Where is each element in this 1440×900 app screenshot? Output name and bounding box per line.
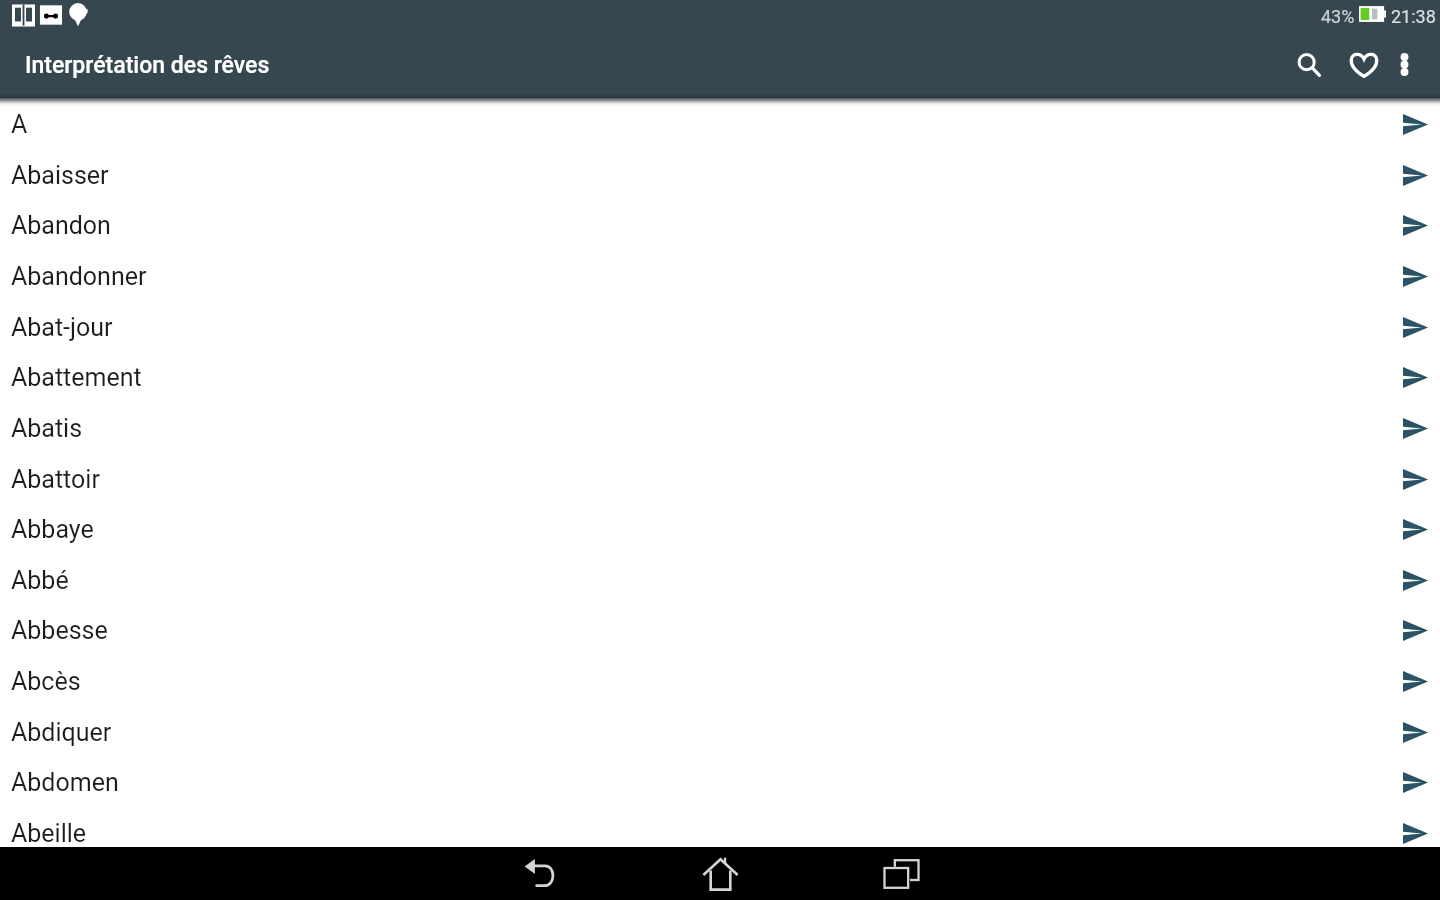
- button[interactable]: Open Abandonner: [1392, 253, 1440, 304]
- button[interactable]: Abdomen: [0, 759, 1440, 810]
- button[interactable]: Abatis: [0, 405, 1440, 456]
- staticText: Abaisser: [11, 161, 1392, 190]
- staticText: Abattoir: [11, 465, 1392, 494]
- button[interactable]: Favorites: [1339, 40, 1388, 89]
- button[interactable]: Home: [630, 847, 811, 900]
- staticText: Abattement: [11, 363, 1392, 392]
- staticText: Abeille: [11, 819, 1392, 848]
- button[interactable]: Abandonner: [0, 253, 1440, 304]
- button[interactable]: Open Abandon: [1392, 202, 1440, 253]
- button[interactable]: Open Abattement: [1392, 354, 1440, 405]
- button[interactable]: Abandon: [0, 202, 1440, 253]
- staticText: Abbesse: [11, 616, 1392, 645]
- button[interactable]: Open Abat-jour: [1392, 304, 1440, 355]
- button[interactable]: Abbesse: [0, 607, 1440, 658]
- button[interactable]: Abat-jour: [0, 304, 1440, 355]
- button[interactable]: Abdiquer: [0, 709, 1440, 760]
- button[interactable]: Open Abdiquer: [1392, 709, 1440, 760]
- staticText: Abcès: [11, 667, 1392, 696]
- staticText: Abandon: [11, 211, 1392, 240]
- button[interactable]: Open Abatis: [1392, 405, 1440, 456]
- button[interactable]: Open A: [1392, 101, 1440, 152]
- button[interactable]: Abbé: [0, 557, 1440, 608]
- staticText: 43%: [1321, 6, 1355, 27]
- button[interactable]: Open Abeille: [1392, 810, 1440, 861]
- staticText: Abat-jour: [11, 313, 1392, 342]
- button[interactable]: Open Abbé: [1392, 557, 1440, 608]
- button[interactable]: Open Abattoir: [1392, 456, 1440, 507]
- staticText: 21:38: [1391, 6, 1436, 27]
- staticText: Abandonner: [11, 262, 1392, 291]
- button[interactable]: Open Abbaye: [1392, 506, 1440, 557]
- button[interactable]: Abcès: [0, 658, 1440, 709]
- button[interactable]: More options: [1382, 42, 1426, 86]
- staticText: Abdiquer: [11, 718, 1392, 747]
- button[interactable]: Abbaye: [0, 506, 1440, 557]
- button[interactable]: A: [0, 101, 1440, 152]
- button[interactable]: Back: [449, 847, 630, 900]
- button[interactable]: Open Abaisser: [1392, 152, 1440, 203]
- button[interactable]: Search: [1284, 40, 1333, 89]
- button[interactable]: Open Abcès: [1392, 658, 1440, 709]
- button[interactable]: Abeille: [0, 810, 1440, 861]
- button[interactable]: Abattement: [0, 354, 1440, 405]
- staticText: Abatis: [11, 414, 1392, 443]
- staticText: Interprétation des rêves: [25, 52, 270, 79]
- staticText: Abbaye: [11, 515, 1392, 544]
- staticText: Abbé: [11, 566, 1392, 595]
- button[interactable]: Recent apps: [811, 847, 992, 900]
- button[interactable]: Abattoir: [0, 456, 1440, 507]
- button[interactable]: Open Abdomen: [1392, 759, 1440, 810]
- button[interactable]: Open Abbesse: [1392, 607, 1440, 658]
- staticText: Abdomen: [11, 768, 1392, 797]
- staticText: A: [11, 110, 1392, 139]
- button[interactable]: Abaisser: [0, 152, 1440, 203]
